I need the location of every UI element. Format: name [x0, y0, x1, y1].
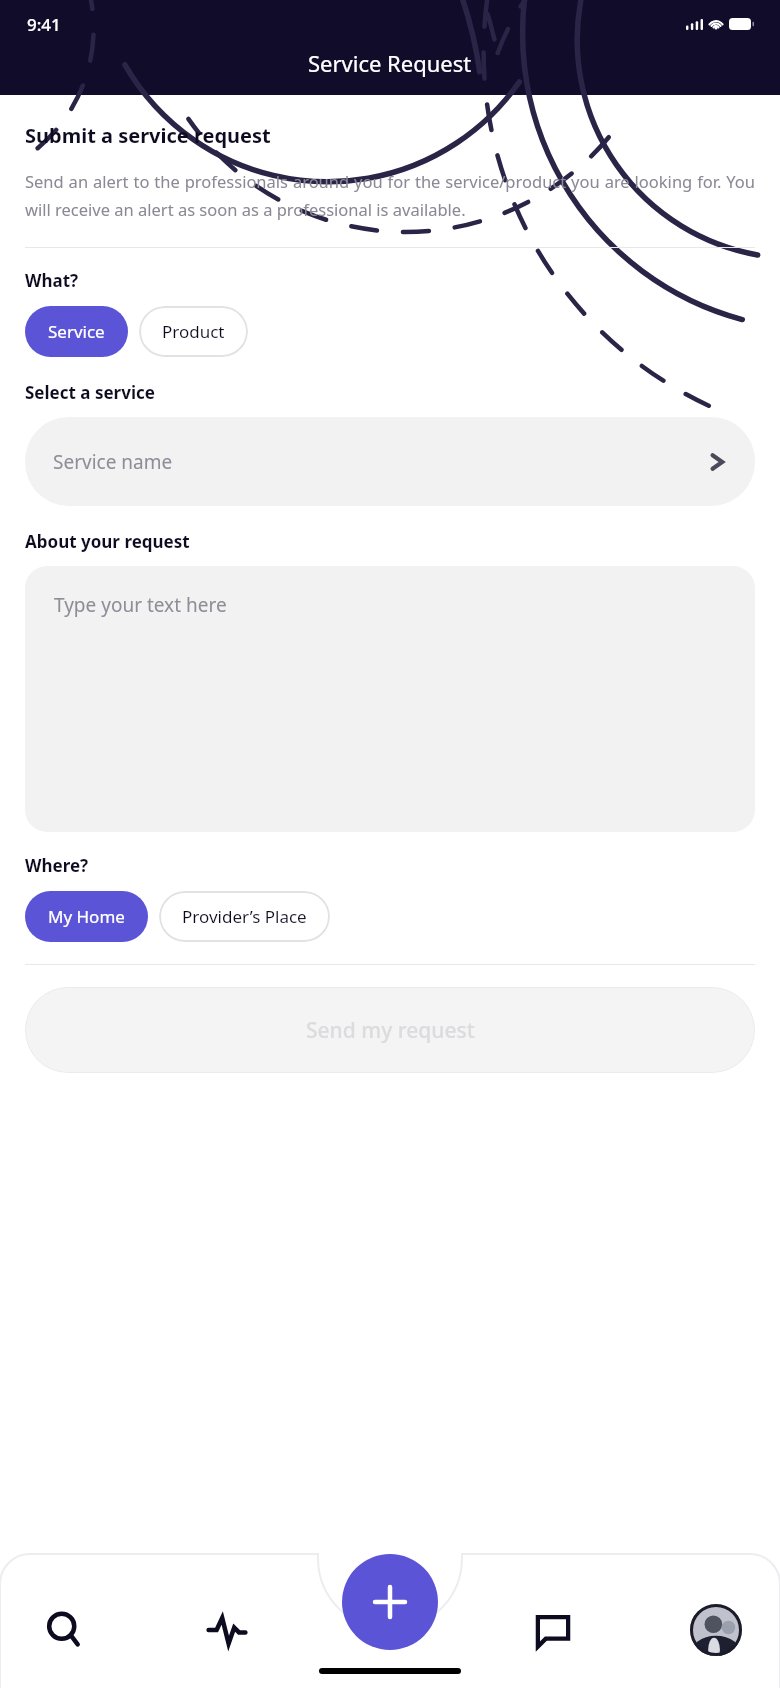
button[interactable]: Service [25, 306, 128, 357]
button[interactable]: Search [28, 1594, 100, 1666]
staticText: Send my request [306, 1016, 475, 1045]
staticText: My Home [48, 905, 125, 928]
staticText: Service [48, 320, 105, 343]
button[interactable]: Profile [680, 1594, 752, 1666]
button[interactable]: Messages [517, 1594, 589, 1666]
staticText: 9:41 [27, 13, 61, 36]
staticText: Where? [25, 854, 89, 877]
button[interactable]: Type your text here [25, 566, 755, 832]
other: Open service list [707, 452, 727, 472]
staticText: Product [162, 320, 225, 343]
staticText: Service Request [308, 48, 472, 78]
staticText: Provider’s Place [182, 905, 307, 928]
button[interactable]: My Home [25, 891, 148, 942]
staticText: About your request [25, 530, 190, 553]
button[interactable]: Provider’s Place [159, 891, 330, 942]
button[interactable]: Service name [25, 417, 755, 506]
staticText: Send an alert to the professionals aroun… [25, 170, 755, 221]
staticText: Service name [53, 449, 173, 475]
staticText: What? [25, 269, 79, 292]
staticText: Type your text here [54, 592, 227, 618]
button[interactable]: Create new request [342, 1554, 438, 1650]
button[interactable]: Product [139, 306, 248, 357]
button[interactable]: Send my request [25, 987, 755, 1073]
staticText: Select a service [25, 381, 155, 404]
staticText: Submit a service request [25, 122, 271, 149]
button[interactable]: Activity [191, 1594, 263, 1666]
